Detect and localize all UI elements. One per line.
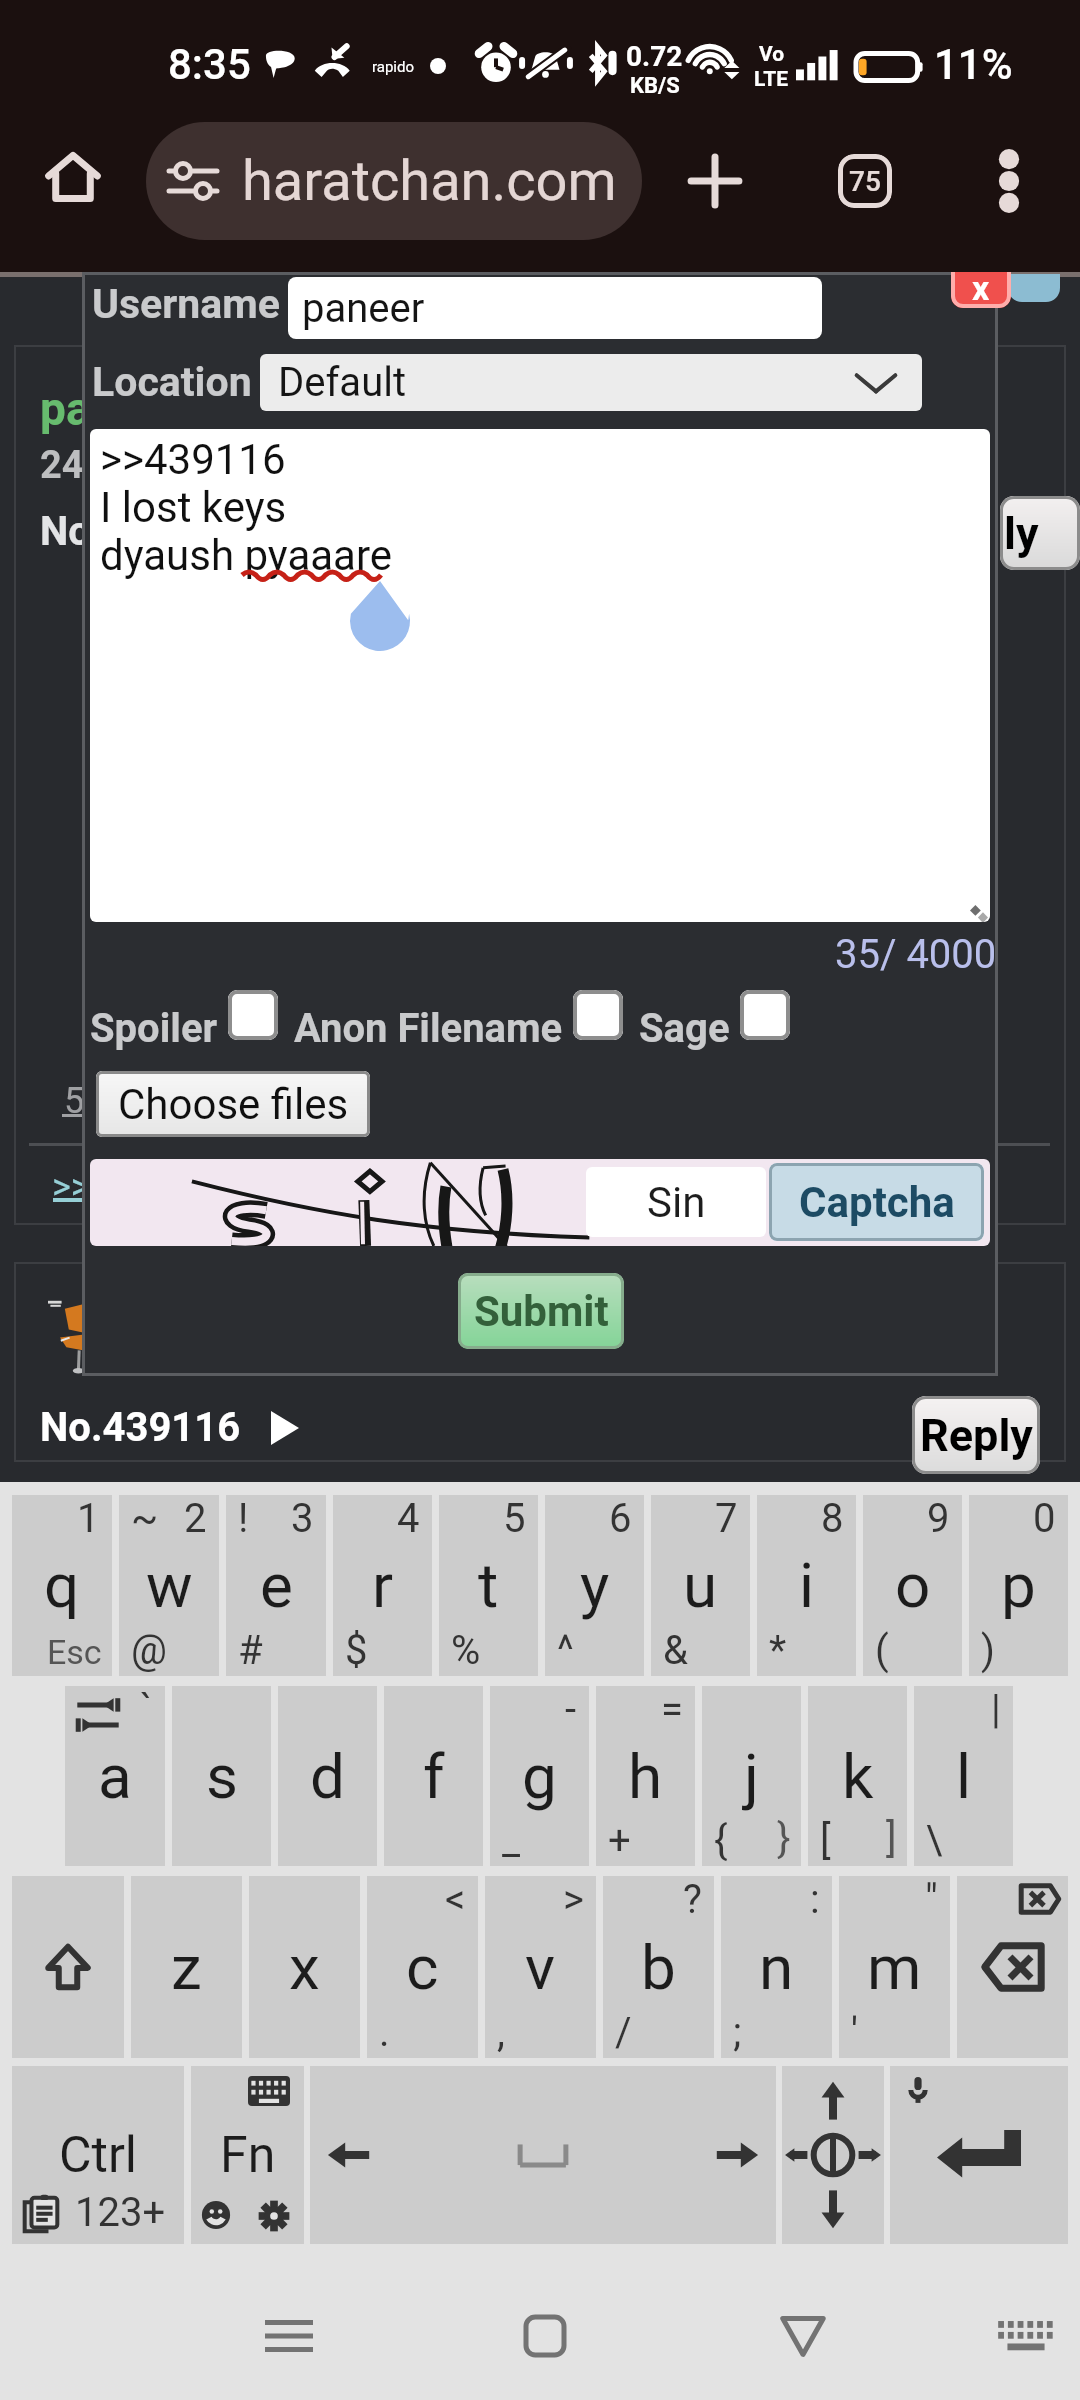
button[interactable]: Back bbox=[743, 2276, 863, 2396]
button[interactable]: Recents bbox=[229, 2276, 349, 2396]
button[interactable]: Enter bbox=[890, 2066, 1068, 2244]
button[interactable]: More options bbox=[966, 138, 1052, 224]
staticText: [ bbox=[820, 1817, 831, 1864]
staticText: rapido bbox=[372, 58, 415, 76]
button[interactable]: 7 bbox=[651, 1495, 750, 1676]
staticText: 7 bbox=[715, 1495, 738, 1542]
button[interactable]: { bbox=[702, 1686, 801, 1866]
staticText: Reply bbox=[920, 1409, 1033, 1462]
button[interactable]: [ bbox=[808, 1686, 907, 1866]
staticText: I lost keys bbox=[100, 483, 287, 532]
staticText: 24 bbox=[40, 443, 84, 488]
staticText: p bbox=[1001, 1549, 1036, 1622]
button[interactable]: < bbox=[367, 1876, 478, 2058]
button[interactable]: ! bbox=[226, 1495, 326, 1676]
button[interactable]: 8 bbox=[757, 1495, 856, 1676]
button[interactable]: x bbox=[249, 1876, 360, 2058]
button[interactable]: shift bbox=[12, 1876, 124, 2058]
staticText: 2 bbox=[184, 1495, 207, 1542]
button[interactable]: Home bbox=[485, 2276, 605, 2396]
staticText: $ bbox=[345, 1627, 368, 1674]
button[interactable]: : bbox=[721, 1876, 832, 2058]
button[interactable]: f bbox=[384, 1686, 483, 1866]
staticText: l bbox=[956, 1740, 972, 1813]
button[interactable]: z bbox=[131, 1876, 242, 2058]
button[interactable]: ly bbox=[1000, 496, 1080, 570]
staticText: } bbox=[777, 1815, 791, 1862]
button[interactable]: Sin bbox=[586, 1167, 766, 1237]
staticText: haratchan.com bbox=[242, 148, 617, 214]
button[interactable]: Tabs bbox=[822, 138, 908, 224]
button[interactable]: Default bbox=[260, 354, 922, 411]
staticText: No.439116 bbox=[40, 1404, 241, 1451]
button[interactable]: 9 bbox=[863, 1495, 962, 1676]
staticText: w bbox=[146, 1549, 193, 1622]
button[interactable]: = bbox=[596, 1686, 695, 1866]
staticText: { bbox=[714, 1817, 728, 1864]
staticText: 0 bbox=[1033, 1495, 1056, 1542]
button[interactable]: Space bbox=[310, 2066, 776, 2244]
staticText: paneer bbox=[302, 285, 425, 332]
button[interactable]: 5 bbox=[439, 1495, 538, 1676]
button[interactable]: d bbox=[278, 1686, 377, 1866]
staticText: - bbox=[565, 1686, 577, 1733]
staticText: u bbox=[683, 1549, 718, 1622]
button[interactable]: Submit bbox=[458, 1273, 624, 1349]
staticText: Username bbox=[92, 280, 280, 328]
staticText: b bbox=[641, 1931, 676, 2004]
staticText: f bbox=[423, 1740, 445, 1813]
staticText: 123+ bbox=[75, 2189, 166, 2236]
button[interactable]: Close bbox=[951, 258, 1011, 308]
button[interactable]: paneer bbox=[288, 277, 822, 339]
button[interactable]: Ctrl bbox=[12, 2066, 184, 2244]
staticText: s bbox=[206, 1740, 238, 1813]
button[interactable]: Reply bbox=[912, 1396, 1040, 1474]
button[interactable]: " bbox=[839, 1876, 950, 2058]
button[interactable]: > bbox=[485, 1876, 596, 2058]
button[interactable]: Arrow keys bbox=[782, 2066, 884, 2244]
staticText: Sage bbox=[639, 1005, 730, 1052]
button[interactable]: Checkbox bbox=[573, 990, 623, 1040]
button[interactable]: Hide keyboard bbox=[966, 2276, 1080, 2396]
staticText: 8:35 bbox=[168, 40, 251, 89]
button[interactable]: Checkbox bbox=[228, 990, 278, 1040]
button[interactable]: Captcha bbox=[769, 1163, 984, 1241]
staticText: >>439116 bbox=[100, 435, 286, 484]
staticText: Vo bbox=[759, 42, 785, 67]
staticText: Location bbox=[92, 358, 252, 406]
button[interactable]: haratchan.com bbox=[146, 122, 642, 240]
button[interactable]: Checkbox bbox=[740, 990, 790, 1040]
staticText: r bbox=[372, 1549, 394, 1622]
button[interactable]: bksp bbox=[957, 1876, 1068, 2058]
staticText: y bbox=[580, 1549, 610, 1622]
button[interactable]: New tab bbox=[672, 138, 758, 224]
staticText: ( bbox=[875, 1627, 889, 1674]
staticText: 8 bbox=[821, 1495, 844, 1542]
staticText: v bbox=[525, 1931, 556, 2004]
button[interactable]: >>439116 bbox=[90, 429, 990, 922]
staticText: ^ bbox=[557, 1627, 574, 1674]
staticText: : bbox=[810, 1876, 820, 1923]
staticText: g bbox=[522, 1740, 557, 1813]
button[interactable]: 0 bbox=[969, 1495, 1068, 1676]
button[interactable]: Fn bbox=[191, 2066, 304, 2244]
button[interactable]: ~ bbox=[119, 1495, 219, 1676]
staticText: < bbox=[445, 1876, 466, 1923]
staticText: 5 bbox=[503, 1495, 526, 1542]
button[interactable]: ? bbox=[603, 1876, 714, 2058]
button[interactable]: ` bbox=[65, 1686, 165, 1866]
button[interactable]: 4 bbox=[333, 1495, 432, 1676]
staticText: Fn bbox=[220, 2126, 276, 2185]
button[interactable]: Choose files bbox=[96, 1071, 370, 1137]
staticText: 4 bbox=[397, 1495, 420, 1542]
staticText: z bbox=[171, 1931, 202, 2004]
button[interactable]: 6 bbox=[545, 1495, 644, 1676]
button[interactable]: - bbox=[490, 1686, 589, 1866]
button[interactable]: 1 bbox=[12, 1495, 112, 1676]
staticText: _ bbox=[502, 1817, 521, 1864]
button[interactable]: s bbox=[172, 1686, 271, 1866]
button[interactable]: | bbox=[914, 1686, 1013, 1866]
staticText: . bbox=[379, 2009, 390, 2056]
staticText: a bbox=[98, 1740, 132, 1813]
button[interactable]: Home bbox=[30, 134, 116, 220]
